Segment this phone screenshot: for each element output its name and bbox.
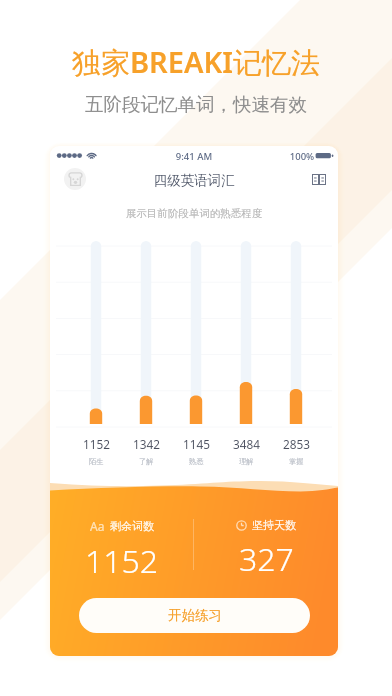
staticText: 1152 bbox=[83, 436, 110, 452]
staticText: 理解 bbox=[239, 457, 254, 466]
staticText: 了解 bbox=[139, 457, 154, 466]
staticText: 1145 bbox=[183, 436, 210, 452]
button[interactable]: Profile bbox=[64, 168, 86, 190]
staticText: 剩余词数 bbox=[110, 519, 154, 533]
staticText: 开始练习 bbox=[168, 607, 222, 624]
staticText: 四级英语词汇 bbox=[50, 172, 338, 189]
staticText: 2853 bbox=[283, 436, 310, 452]
staticText: 坚持天数 bbox=[252, 518, 296, 532]
staticText: 陌生 bbox=[89, 457, 104, 466]
staticText: 展示目前阶段单词的熟悉程度 bbox=[50, 207, 338, 220]
staticText: 熟悉 bbox=[189, 457, 204, 466]
button[interactable]: Dictionary bbox=[308, 170, 329, 188]
staticText: 100% bbox=[285, 150, 319, 163]
staticText: 掌握 bbox=[289, 457, 304, 466]
staticText: 五阶段记忆单词，快速有效 bbox=[85, 93, 307, 116]
staticText: 1342 bbox=[133, 436, 160, 452]
staticText: 独家BREAKI记忆法 bbox=[72, 42, 320, 82]
staticText: Aa bbox=[90, 518, 105, 534]
staticText: 327 bbox=[239, 537, 294, 581]
staticText: 3484 bbox=[233, 436, 260, 452]
staticText: 1152 bbox=[85, 539, 159, 583]
staticText: 9:41 AM bbox=[174, 150, 214, 163]
button[interactable]: 开始练习 bbox=[79, 598, 310, 633]
